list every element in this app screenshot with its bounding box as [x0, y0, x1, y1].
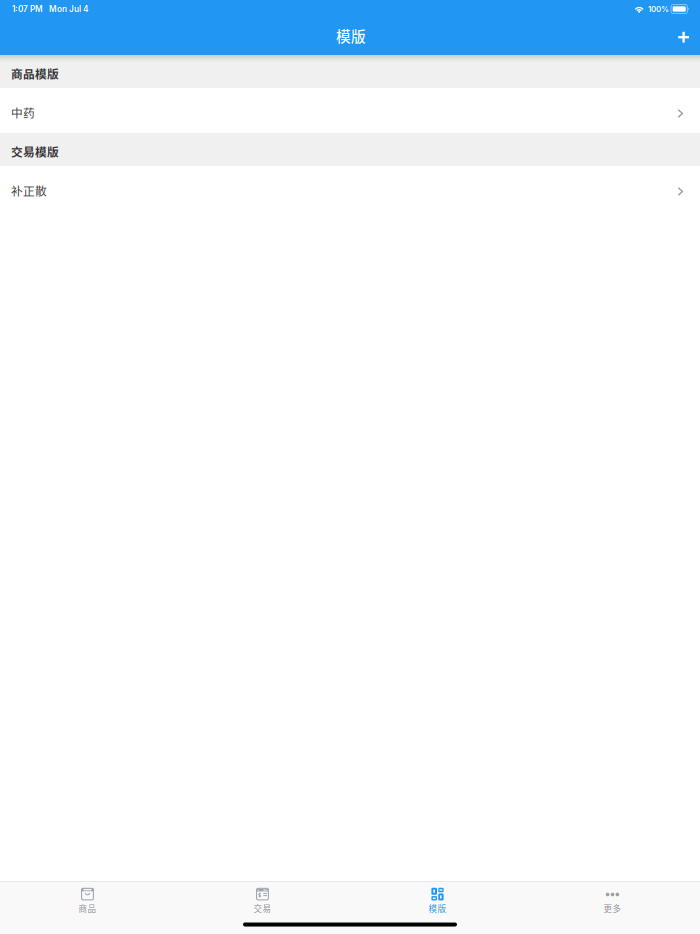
button[interactable]: 补正散 — [0, 166, 700, 211]
button[interactable]: 交易 — [175, 882, 350, 934]
staticText: 商品模版 — [11, 65, 59, 82]
button[interactable]: Add — [664, 22, 700, 55]
staticText: 1:07 PM — [12, 4, 43, 14]
staticText: 补正散 — [11, 182, 47, 199]
staticText: 更多 — [603, 902, 621, 915]
staticText: 交易 — [253, 902, 271, 915]
staticText: 100% — [648, 4, 669, 14]
button[interactable]: 商品 — [0, 882, 175, 934]
staticText: 模版 — [336, 25, 366, 46]
staticText: 商品 — [78, 902, 96, 915]
button[interactable]: 更多 — [525, 882, 700, 934]
button[interactable]: 中药 — [0, 88, 700, 133]
staticText: 交易模版 — [11, 143, 59, 160]
button[interactable]: 模版 — [350, 882, 525, 934]
staticText: Mon Jul 4 — [43, 4, 89, 14]
staticText: 模版 — [428, 902, 446, 915]
staticText: 中药 — [11, 104, 35, 121]
